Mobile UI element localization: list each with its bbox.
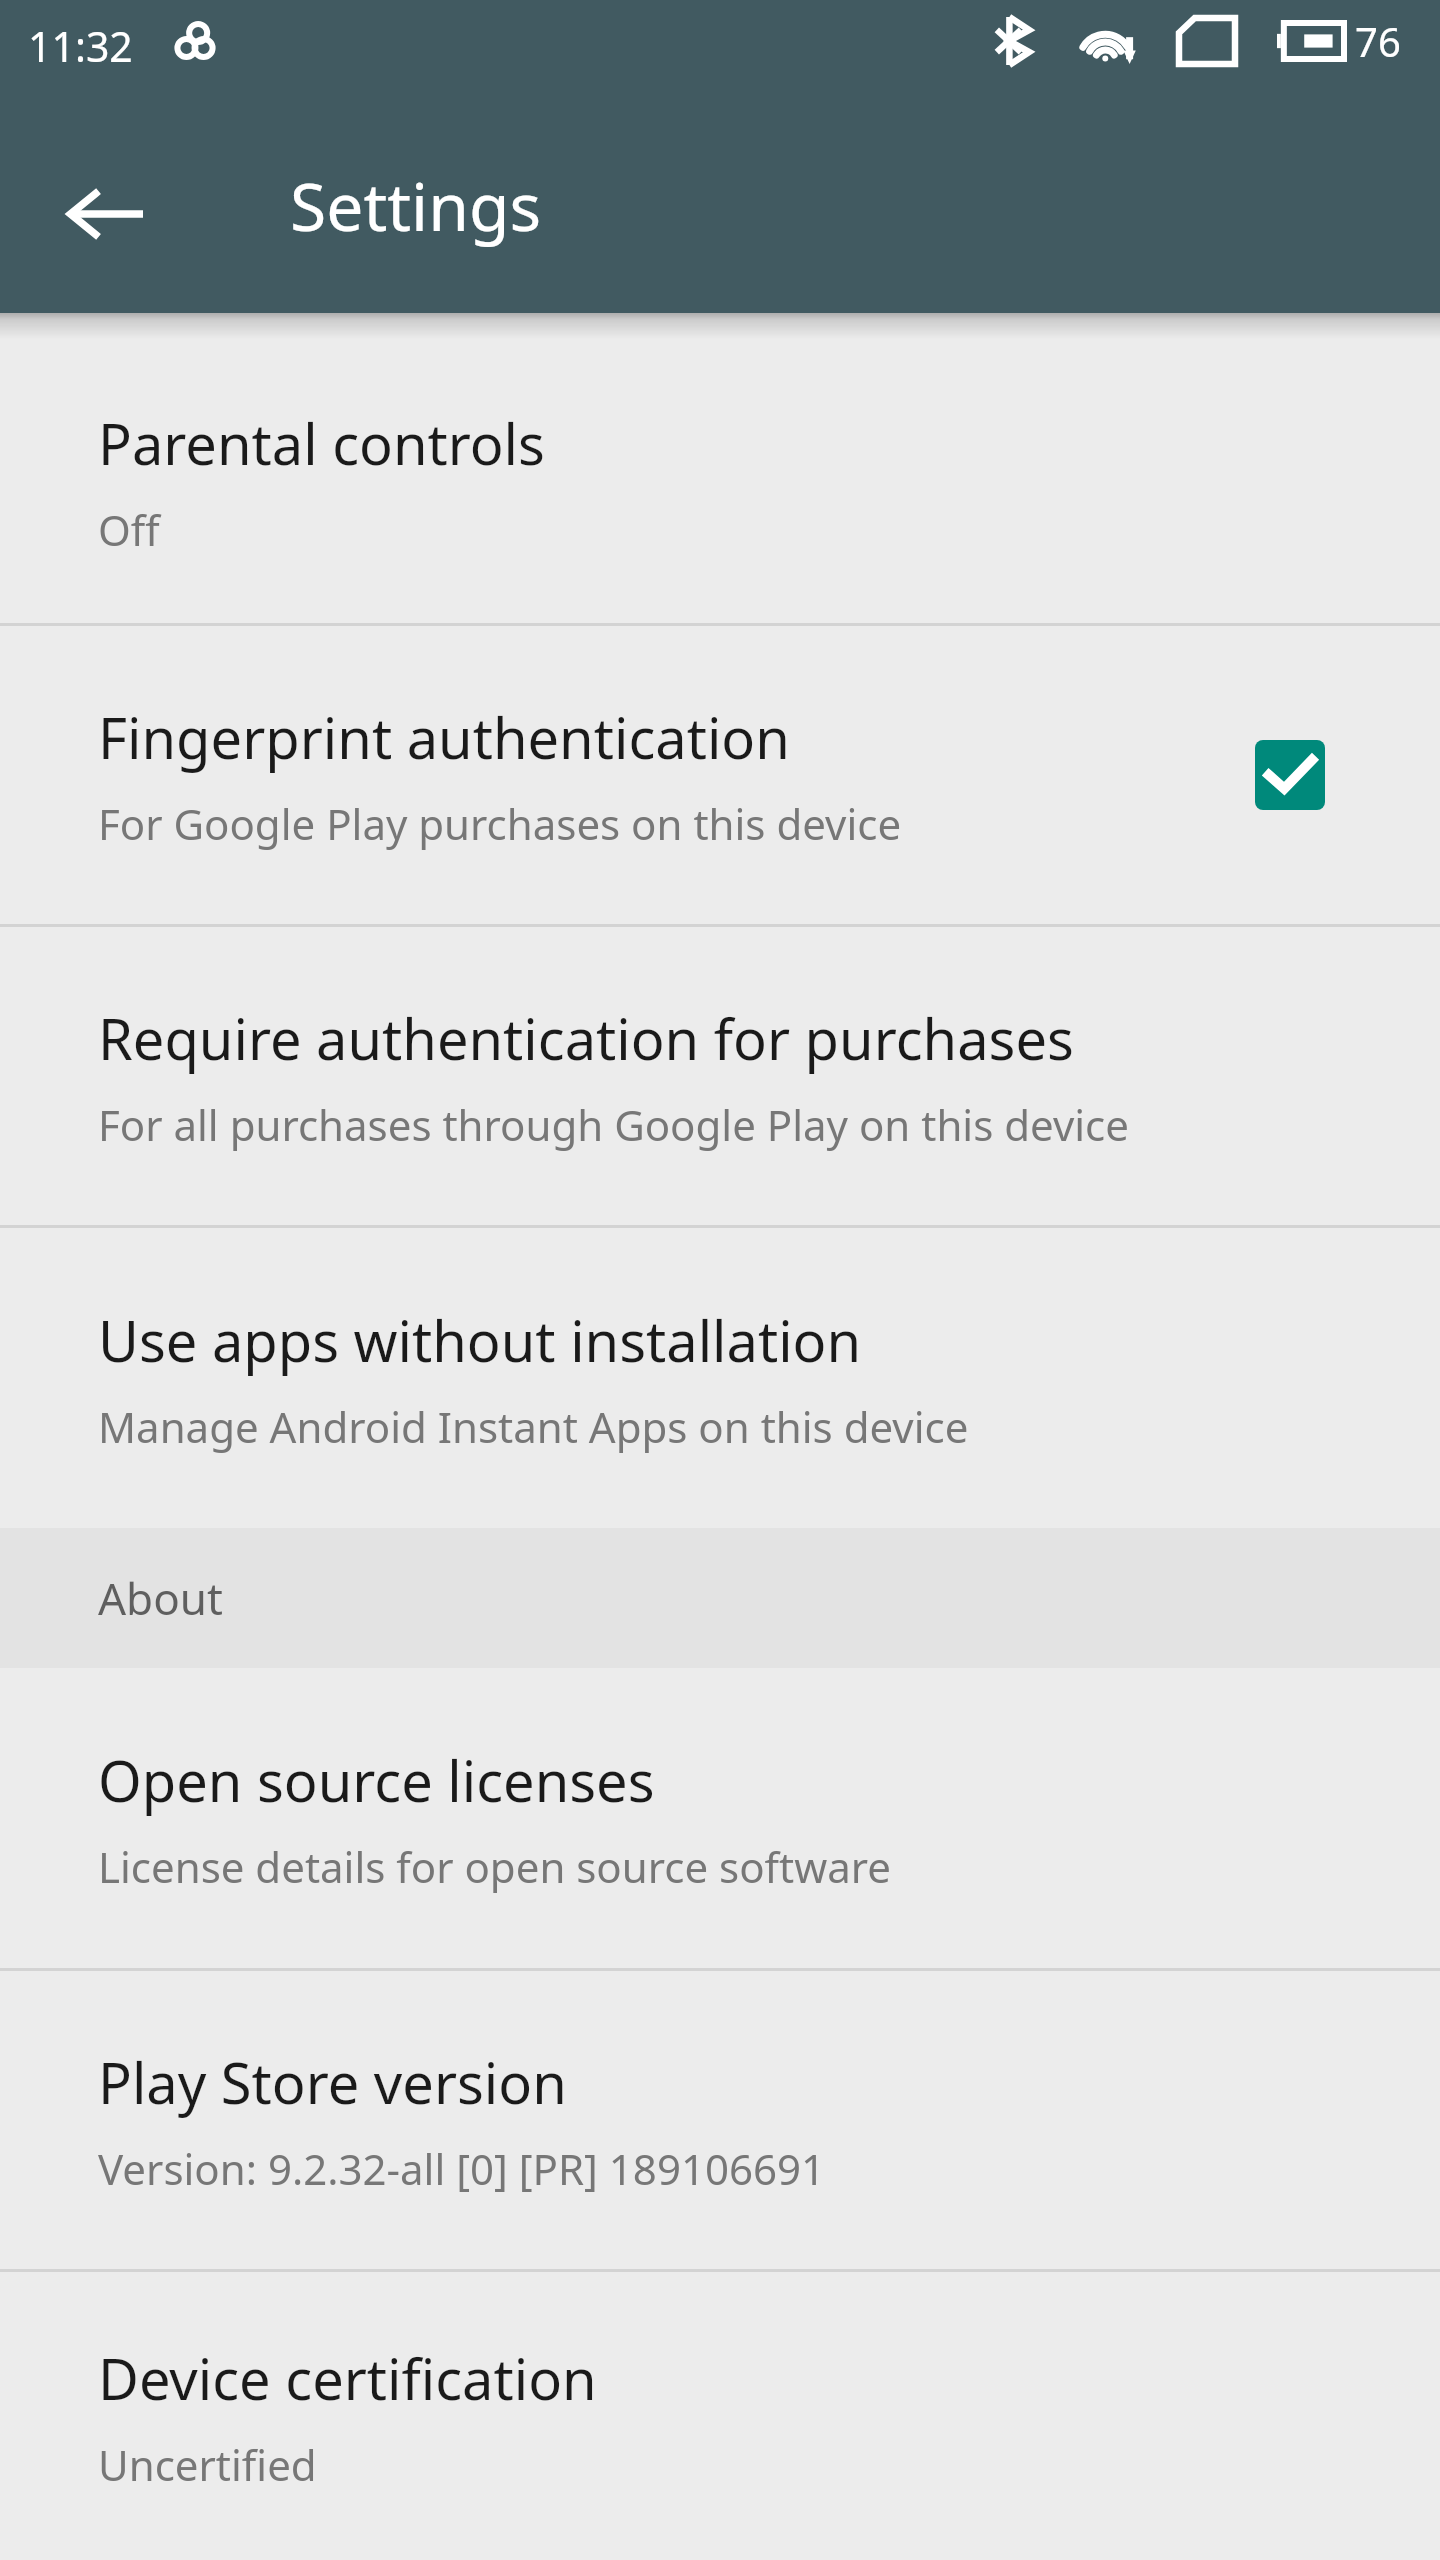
staticText: 11:32 — [28, 18, 133, 74]
staticText: Manage Android Instant Apps on this devi… — [98, 1398, 969, 1455]
button[interactable]: Parental controls — [0, 339, 1440, 623]
button[interactable]: Require authentication for purchases — [0, 927, 1440, 1225]
staticText: Version: 9.2.32-all [0] [PR] 189106691 — [98, 2140, 826, 2197]
staticText: Require authentication for purchases — [98, 1000, 1074, 1076]
button[interactable]: Back — [40, 148, 172, 280]
staticText: For all purchases through Google Play on… — [98, 1096, 1129, 1153]
staticText: Use apps without installation — [98, 1302, 862, 1378]
staticText: Device certification — [98, 2340, 597, 2416]
button[interactable]: Device certification — [0, 2272, 1440, 2560]
button[interactable]: Open source licenses — [0, 1668, 1440, 1968]
staticText: 76 — [1355, 14, 1401, 68]
button[interactable]: Fingerprint authentication — [0, 626, 1440, 924]
staticText: For Google Play purchases on this device — [98, 795, 902, 852]
staticText: Settings — [290, 160, 542, 250]
staticText: Open source licenses — [98, 1742, 655, 1818]
button[interactable]: Fingerprint authentication checkbox — [1238, 723, 1342, 827]
staticText: Fingerprint authentication — [98, 699, 790, 775]
staticText: License details for open source software — [98, 1838, 891, 1895]
staticText: Play Store version — [98, 2044, 567, 2120]
button[interactable]: Use apps without installation — [0, 1228, 1440, 1528]
staticText: About — [98, 1568, 223, 1628]
button[interactable]: Play Store version — [0, 1971, 1440, 2269]
staticText: Off — [98, 501, 160, 558]
staticText: Parental controls — [98, 405, 545, 481]
staticText: Uncertified — [98, 2436, 317, 2493]
